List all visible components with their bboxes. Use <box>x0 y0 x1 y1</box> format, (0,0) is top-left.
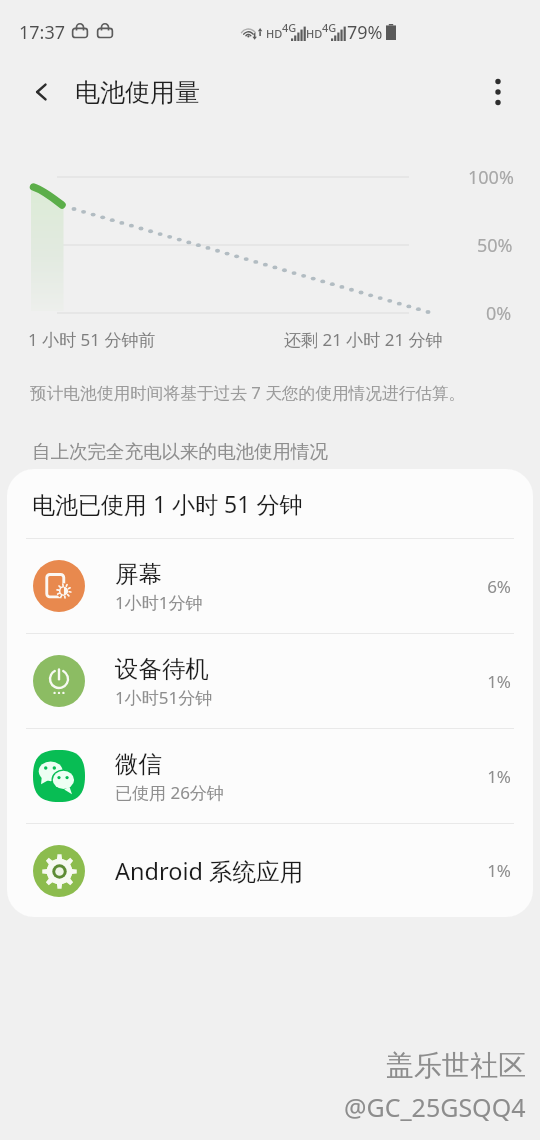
staticText: 1% <box>451 670 511 693</box>
button[interactable]: 屏幕 <box>7 539 533 633</box>
staticText: 1% <box>451 765 511 788</box>
staticText: HD <box>266 26 283 41</box>
staticText: 预计电池使用时间将基于过去 7 天您的使用情况进行估算。 <box>30 381 466 404</box>
staticText: 微信 <box>115 749 162 779</box>
staticText: 1小时51分钟 <box>115 686 213 709</box>
staticText: 电池已使用 1 小时 51 分钟 <box>32 488 303 519</box>
button[interactable]: 微信 <box>7 729 533 823</box>
staticText: 屏幕 <box>115 559 162 589</box>
staticText: 1 小时 51 分钟前 <box>28 328 156 351</box>
staticText: 1% <box>451 859 511 882</box>
staticText: 已使用 26分钟 <box>115 781 224 804</box>
staticText: HD <box>306 26 323 41</box>
staticText: 设备待机 <box>115 654 209 684</box>
staticText: 盖乐世社区 <box>386 1048 526 1083</box>
staticText: Android 系统应用 <box>115 855 304 887</box>
staticText: @GC_25GSQQ4 <box>344 1090 526 1124</box>
staticText: 100% <box>468 165 514 190</box>
button[interactable]: 设备待机 <box>7 634 533 728</box>
button[interactable]: More options <box>474 68 522 116</box>
staticText: 50% <box>477 233 513 258</box>
staticText: 79% <box>347 20 383 45</box>
staticText: 0% <box>486 301 512 326</box>
button[interactable]: Android 系统应用 <box>7 824 533 917</box>
staticText: 电池使用量 <box>75 77 200 108</box>
staticText: 17:37 <box>19 20 66 45</box>
staticText: 自上次完全充电以来的电池使用情况 <box>32 440 328 463</box>
staticText: 还剩 21 小时 21 分钟 <box>284 328 443 351</box>
staticText: 4G <box>282 20 297 35</box>
staticText: 6% <box>451 575 511 598</box>
staticText: 1小时1分钟 <box>115 591 203 614</box>
staticText: 4G <box>322 20 337 35</box>
button[interactable]: Back <box>18 68 66 116</box>
